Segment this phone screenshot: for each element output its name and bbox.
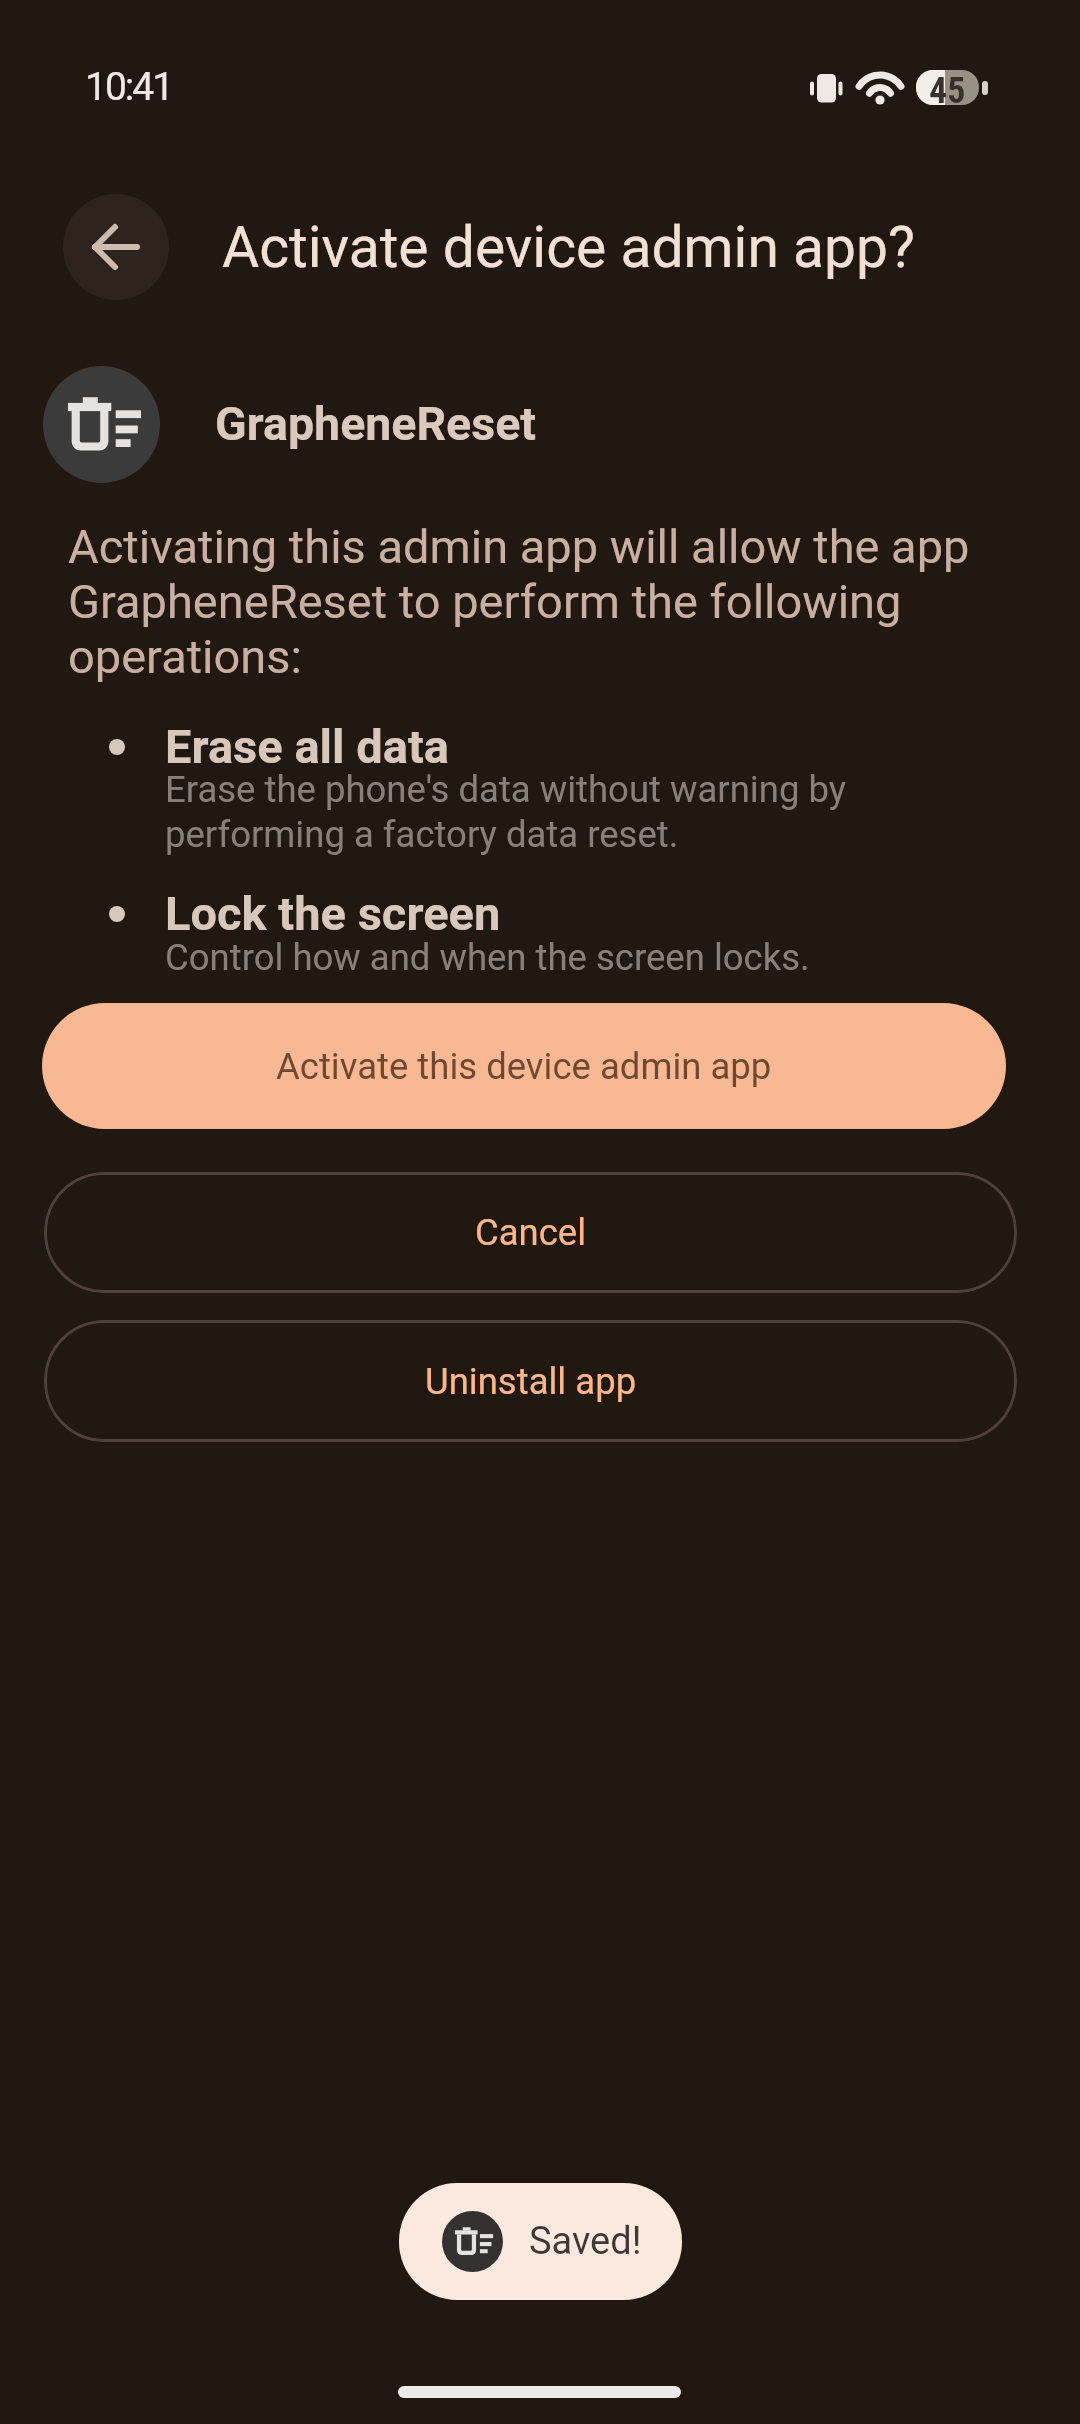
staticText: Erase all data — [165, 719, 450, 774]
staticText: Erase the phone's data without warning b… — [165, 768, 847, 856]
button[interactable]: Uninstall app — [44, 1320, 1017, 1442]
staticText: GrapheneReset — [215, 397, 537, 451]
staticText: 10:41 — [85, 64, 173, 110]
button[interactable]: Cancel — [44, 1172, 1017, 1293]
staticText: Control how and when the screen locks. — [165, 936, 810, 979]
staticText: Cancel — [475, 1211, 587, 1254]
button[interactable] — [63, 194, 169, 300]
staticText: Lock the screen — [165, 886, 501, 941]
staticText: Activate device admin app? — [222, 214, 915, 281]
staticText: Activating this admin app will allow the… — [68, 519, 970, 684]
staticText: 45 — [929, 70, 966, 105]
button[interactable]: Activate this device admin app — [42, 1003, 1006, 1129]
staticText: Uninstall app — [425, 1360, 637, 1403]
staticText: Saved! — [529, 2219, 642, 2264]
staticText: Activate this device admin app — [276, 1045, 772, 1088]
